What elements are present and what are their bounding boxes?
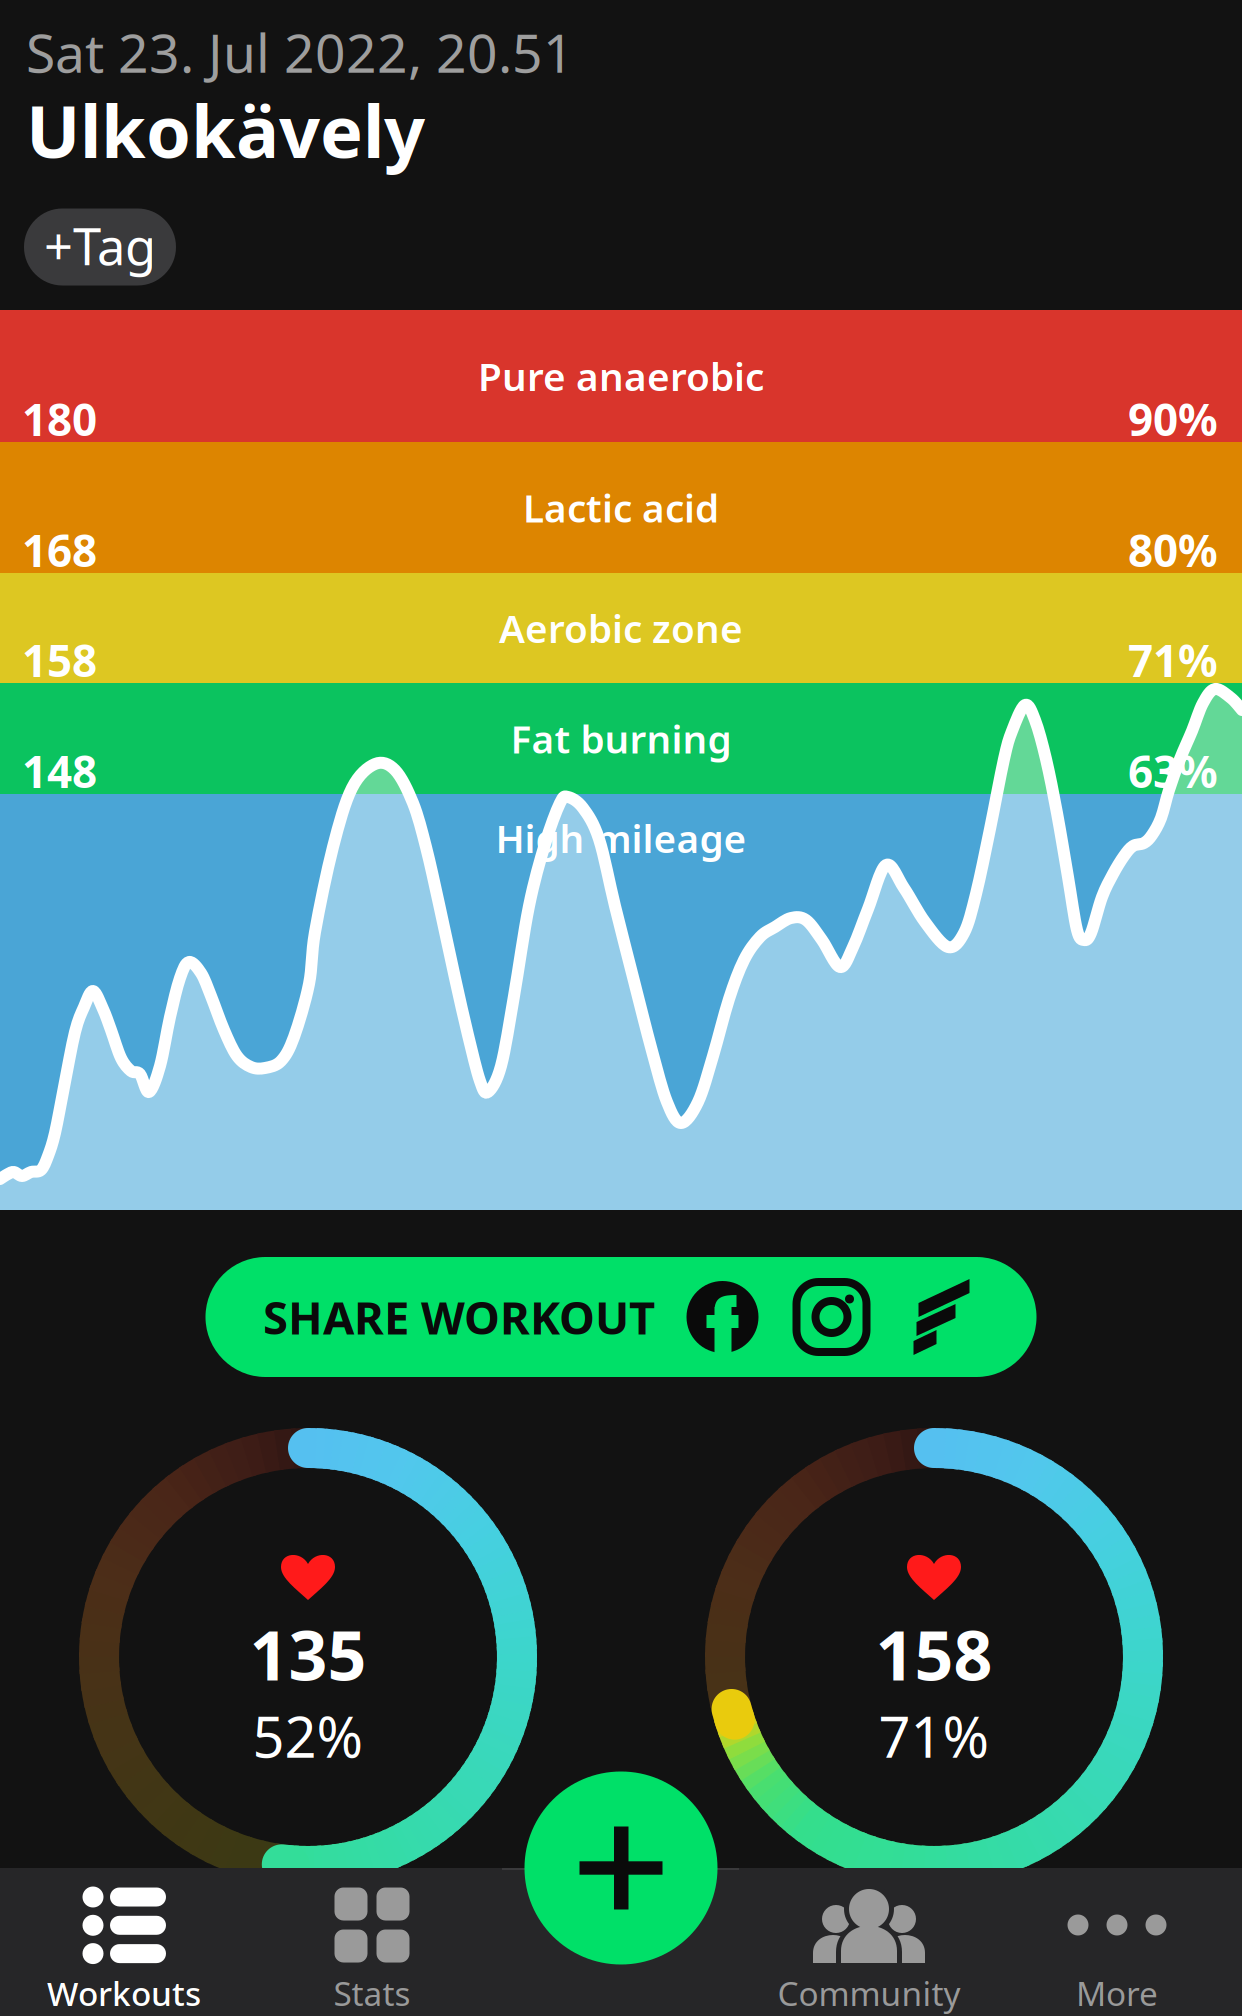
- staticText: SHARE WORKOUT: [263, 1287, 655, 1347]
- staticText: 63%: [1128, 742, 1218, 800]
- staticText: More: [1076, 1971, 1158, 2015]
- staticText: 80%: [1128, 521, 1218, 579]
- button[interactable]: SHARE WORKOUT: [205, 1257, 1036, 1377]
- button[interactable]: More: [987, 1868, 1242, 2016]
- staticText: Pure anaerobic: [478, 350, 764, 402]
- staticText: Sat 23. Jul 2022, 20.51: [26, 17, 574, 87]
- staticText: High mileage: [495, 812, 746, 864]
- staticText: Aerobic zone: [499, 602, 743, 654]
- button[interactable]: Stats: [242, 1868, 502, 2016]
- staticText: Workouts: [47, 1971, 201, 2015]
- button[interactable]: Add workout: [524, 1771, 717, 1964]
- staticText: 148: [22, 742, 97, 800]
- staticText: 71%: [1128, 631, 1218, 689]
- staticText: Stats: [333, 1971, 410, 2015]
- staticText: 71%: [878, 1699, 989, 1773]
- staticText: Lactic acid: [523, 482, 719, 533]
- button[interactable]: +Tag: [24, 208, 176, 285]
- button[interactable]: Workouts: [0, 1868, 254, 2016]
- staticText: 168: [22, 521, 97, 579]
- staticText: 158: [875, 1609, 992, 1699]
- staticText: 90%: [1128, 390, 1218, 448]
- staticText: +Tag: [44, 212, 156, 279]
- button[interactable]: Community: [739, 1868, 999, 2016]
- staticText: Community: [777, 1971, 960, 2015]
- staticText: Ulkokävely: [26, 82, 425, 178]
- staticText: 180: [22, 390, 97, 448]
- staticText: 135: [249, 1609, 366, 1699]
- staticText: 158: [22, 631, 97, 689]
- staticText: 52%: [252, 1699, 363, 1773]
- staticText: Fat burning: [510, 713, 731, 764]
